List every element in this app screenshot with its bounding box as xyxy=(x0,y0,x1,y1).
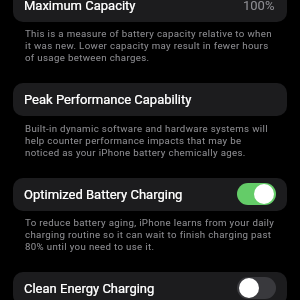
staticText: Clean Energy Charging xyxy=(24,281,155,296)
button[interactable]: Peak Performance Capability xyxy=(13,83,287,116)
button[interactable]: Optimized Battery Charging xyxy=(13,178,287,211)
staticText: 100% xyxy=(243,0,275,13)
staticText: To reduce battery aging, iPhone learns f… xyxy=(25,216,277,252)
staticText: This is a measure of battery capacity re… xyxy=(25,27,277,63)
staticText: Built-in dynamic software and hardware s… xyxy=(25,122,277,158)
button[interactable]: Clean Energy Charging toggle xyxy=(237,277,276,299)
button[interactable]: Optimized Battery Charging toggle xyxy=(237,183,276,205)
button[interactable]: Clean Energy Charging xyxy=(13,272,287,300)
staticText: Maximum Capacity xyxy=(24,0,136,13)
staticText: Optimized Battery Charging xyxy=(24,187,183,202)
staticText: Peak Performance Capability xyxy=(24,92,192,107)
button[interactable]: Maximum Capacity xyxy=(13,0,287,22)
